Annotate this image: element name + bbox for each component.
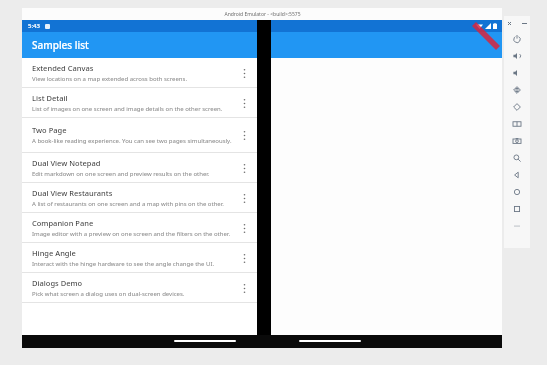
- staticText: List of images on one screen and image d…: [32, 105, 223, 113]
- staticText: List Detail: [32, 93, 68, 103]
- button[interactable]: More options for Dialogs Demo: [235, 275, 253, 301]
- button[interactable]: Screenshot: [504, 132, 530, 149]
- button[interactable]: More options for Two Page: [235, 122, 253, 148]
- staticText: 5:43: [28, 22, 40, 30]
- button[interactable]: Rotate right: [504, 98, 530, 115]
- staticText: Android Emulator - <build>:5575: [224, 11, 301, 18]
- button[interactable]: Companion Pane: [22, 213, 257, 243]
- button[interactable]: Dialogs Demo: [22, 273, 257, 303]
- button[interactable]: More options for Hinge Angle: [235, 245, 253, 271]
- button[interactable]: More: [504, 217, 530, 234]
- staticText: Hinge Angle: [32, 248, 76, 258]
- staticText: Edit markdown on one screen and preview …: [32, 170, 210, 178]
- button[interactable]: Rotate left: [504, 81, 530, 98]
- staticText: Dialogs Demo: [32, 278, 83, 288]
- button[interactable]: Two Page: [22, 118, 257, 153]
- button[interactable]: Home: [504, 183, 530, 200]
- button[interactable]: More options for Dual View Restaurants: [235, 185, 253, 211]
- button[interactable]: More options for List Detail: [235, 90, 253, 116]
- staticText: A list of restaurants on one screen and …: [32, 200, 224, 208]
- staticText: Image editor with a preview on one scree…: [32, 230, 230, 238]
- staticText: Pick what screen a dialog uses on dual-s…: [32, 290, 185, 298]
- button[interactable]: List Detail: [22, 88, 257, 118]
- button[interactable]: Dual View Notepad: [22, 153, 257, 183]
- button[interactable]: Resize: [504, 115, 530, 132]
- button[interactable]: Zoom: [504, 149, 530, 166]
- button[interactable]: More options for Companion Pane: [235, 215, 253, 241]
- button[interactable]: Volume up: [504, 47, 530, 64]
- button[interactable]: Overview: [504, 200, 530, 217]
- staticText: Dual View Restaurants: [32, 188, 113, 198]
- button[interactable]: Back: [504, 166, 530, 183]
- staticText: Dual View Notepad: [32, 158, 101, 168]
- staticText: Samples list: [32, 38, 89, 52]
- button[interactable]: Power: [504, 30, 530, 47]
- button[interactable]: Minimize: [522, 21, 527, 26]
- staticText: Two Page: [32, 125, 67, 135]
- staticText: Companion Pane: [32, 218, 94, 228]
- button[interactable]: Dual View Restaurants: [22, 183, 257, 213]
- button[interactable]: Close: [507, 21, 512, 26]
- button[interactable]: Hinge Angle: [22, 243, 257, 273]
- staticText: A book-like reading experience. You can …: [32, 137, 232, 145]
- staticText: Interact with the hinge hardware to see …: [32, 260, 215, 268]
- button[interactable]: Extended Canvas: [22, 58, 257, 88]
- button[interactable]: More options for Extended Canvas: [235, 60, 253, 86]
- button[interactable]: Volume down: [504, 64, 530, 81]
- staticText: Extended Canvas: [32, 63, 94, 73]
- button[interactable]: More options for Dual View Notepad: [235, 155, 253, 181]
- staticText: View locations on a map extended across …: [32, 75, 188, 83]
